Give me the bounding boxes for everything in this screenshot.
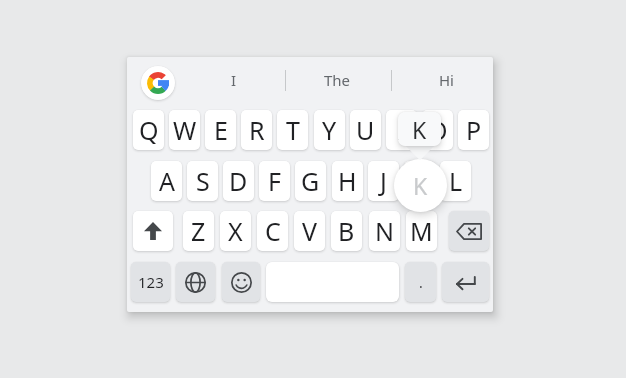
button[interactable]: J [368, 161, 399, 201]
staticText: Y [322, 113, 337, 147]
staticText: D [229, 164, 248, 198]
staticText: X [228, 214, 243, 248]
button[interactable]: D [223, 161, 254, 201]
staticText: T [286, 113, 300, 147]
button[interactable] [141, 66, 175, 100]
button[interactable]: F [259, 161, 290, 201]
button[interactable] [133, 211, 173, 251]
button[interactable]: I [386, 110, 417, 150]
staticText: P [466, 113, 482, 147]
button[interactable]: A [151, 161, 182, 201]
staticText: 123 [138, 272, 164, 292]
button[interactable]: X [220, 211, 251, 251]
button[interactable]: R [241, 110, 272, 150]
button[interactable]: V [294, 211, 325, 251]
button[interactable]: P [458, 110, 489, 150]
staticText: G [301, 164, 320, 198]
button[interactable]: T [277, 110, 308, 150]
button[interactable] [176, 262, 215, 302]
button[interactable]: Y [314, 110, 345, 150]
button[interactable]: Z [183, 211, 214, 251]
button[interactable]: O [422, 110, 453, 150]
button[interactable]: M [406, 211, 437, 251]
staticText: Z [191, 214, 206, 248]
staticText: L [449, 164, 463, 198]
staticText: The [324, 70, 351, 90]
button[interactable]: H [332, 161, 363, 201]
staticText: H [338, 164, 357, 198]
staticText: C [265, 214, 281, 248]
button[interactable]: G [295, 161, 326, 201]
staticText: M [410, 214, 433, 248]
button[interactable]: The [311, 66, 363, 94]
staticText: K [413, 170, 428, 201]
staticText: . [419, 273, 423, 292]
button[interactable] [442, 262, 489, 302]
staticText: R [249, 113, 265, 147]
button[interactable]: K [404, 161, 435, 201]
staticText: I [231, 70, 237, 90]
button[interactable]: B [331, 211, 362, 251]
staticText: B [338, 214, 355, 248]
staticText: F [268, 164, 281, 198]
button[interactable] [222, 262, 260, 302]
staticText: S [196, 164, 210, 198]
button[interactable]: N [369, 211, 400, 251]
staticText: E [214, 113, 228, 147]
staticText: Hi [439, 70, 454, 90]
staticText: V [302, 214, 318, 248]
button[interactable] [449, 211, 489, 251]
staticText: A [159, 164, 175, 198]
staticText: U [356, 113, 375, 147]
button[interactable]: S [187, 161, 218, 201]
staticText: O [428, 113, 448, 147]
button[interactable]: Hi [424, 66, 468, 94]
staticText: Q [139, 113, 159, 147]
staticText: K [412, 164, 428, 198]
button[interactable]: E [205, 110, 236, 150]
staticText: J [380, 164, 387, 198]
button[interactable]: C [257, 211, 288, 251]
button[interactable]: 123 [131, 262, 170, 302]
staticText: K [412, 114, 427, 145]
button[interactable]: L [440, 161, 471, 201]
button[interactable]: W [169, 110, 200, 150]
staticText: N [375, 214, 395, 248]
button[interactable]: U [350, 110, 381, 150]
button[interactable]: . [405, 262, 436, 302]
staticText: W [173, 113, 197, 147]
button[interactable]: Q [133, 110, 164, 150]
button[interactable]: I [214, 66, 254, 94]
staticText: I [397, 113, 406, 147]
